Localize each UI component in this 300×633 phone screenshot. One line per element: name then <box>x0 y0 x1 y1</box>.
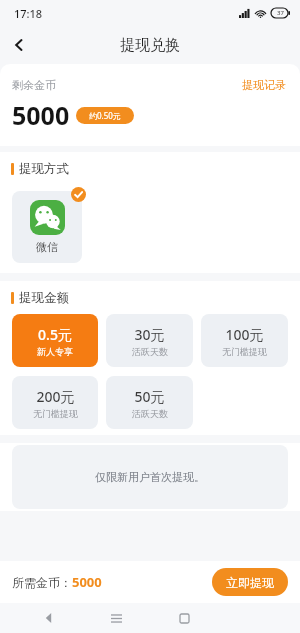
button[interactable]: 50元 <box>106 376 193 429</box>
staticText: 无门槛提现 <box>33 408 78 419</box>
staticText: 立即提现 <box>226 575 274 590</box>
button[interactable]: 200元 <box>12 376 98 429</box>
button[interactable]: 30元 <box>106 314 193 367</box>
button[interactable]: Back <box>31 603 67 633</box>
staticText: 活跃天数 <box>132 346 168 357</box>
button[interactable]: Home <box>166 603 202 633</box>
staticText: 提现记录 <box>242 78 286 92</box>
staticText: 约0.50元 <box>89 110 121 121</box>
button[interactable]: 微信 <box>12 191 82 263</box>
staticText: 37 <box>277 9 284 17</box>
staticText: 100元 <box>225 325 264 344</box>
staticText: 提现方式 <box>19 161 69 177</box>
button[interactable]: 立即提现 <box>212 568 288 596</box>
staticText: 提现兑换 <box>120 36 180 55</box>
staticText: 30元 <box>134 325 165 344</box>
button[interactable]: Back <box>0 26 38 64</box>
staticText: 50元 <box>134 387 165 406</box>
staticText: 活跃天数 <box>132 408 168 419</box>
staticText: 0.5元 <box>38 325 72 344</box>
staticText: 所需金币： <box>12 575 72 590</box>
staticText: 提现金额 <box>19 290 69 306</box>
staticText: 无门槛提现 <box>222 346 267 357</box>
staticText: 剩余金币 <box>12 78 56 92</box>
button[interactable]: 0.5元 <box>12 314 98 367</box>
staticText: 200元 <box>36 387 75 406</box>
button[interactable]: 提现记录 <box>240 76 288 94</box>
button[interactable]: 100元 <box>201 314 288 367</box>
staticText: 17:18 <box>14 6 43 21</box>
staticText: 5000 <box>72 573 102 591</box>
staticText: 微信 <box>36 240 58 254</box>
button[interactable]: Recents <box>98 603 134 633</box>
staticText: 仅限新用户首次提现。 <box>95 470 205 484</box>
staticText: 新人专享 <box>37 346 73 357</box>
staticText: 5000 <box>12 98 70 132</box>
